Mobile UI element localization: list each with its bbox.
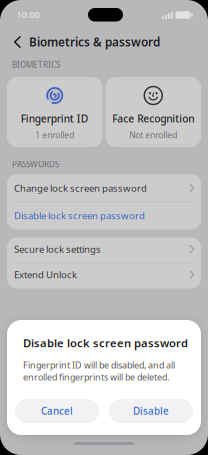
button[interactable]: Back bbox=[12, 36, 22, 48]
button[interactable]: Face Recognition bbox=[105, 77, 201, 147]
staticText: Not enrolled bbox=[129, 129, 177, 141]
staticText: PASSWORDS bbox=[12, 159, 59, 169]
staticText: Extend Unlock bbox=[14, 268, 77, 281]
staticText: enrolled fingerprints will be deleted. bbox=[23, 371, 169, 383]
staticText: Fingerprint ID will be disabled, and all bbox=[23, 359, 175, 371]
button[interactable]: Secure lock settings bbox=[7, 236, 201, 261]
button[interactable]: Extend Unlock bbox=[7, 262, 201, 287]
staticText: BIOMETRICS bbox=[12, 59, 60, 70]
staticText: 10:00 bbox=[16, 8, 39, 21]
button[interactable]: Disable bbox=[109, 399, 193, 423]
staticText: 1 enrolled bbox=[35, 129, 74, 141]
button[interactable]: Cancel bbox=[15, 399, 99, 423]
staticText: Change lock screen password bbox=[14, 182, 147, 194]
staticText: Cancel bbox=[41, 404, 73, 417]
button[interactable]: Disable lock screen password bbox=[7, 203, 201, 228]
staticText: Biometrics & password bbox=[29, 34, 160, 50]
button[interactable]: Fingerprint ID bbox=[7, 77, 102, 147]
staticText: Disable lock screen password bbox=[14, 209, 145, 222]
staticText: Fingerprint ID bbox=[21, 112, 89, 125]
button[interactable]: Change lock screen password bbox=[7, 175, 201, 200]
staticText: Secure lock settings bbox=[14, 243, 101, 255]
staticText: Face Recognition bbox=[112, 112, 194, 125]
staticText: Disable lock screen password bbox=[23, 336, 188, 350]
staticText: Disable bbox=[133, 404, 169, 417]
